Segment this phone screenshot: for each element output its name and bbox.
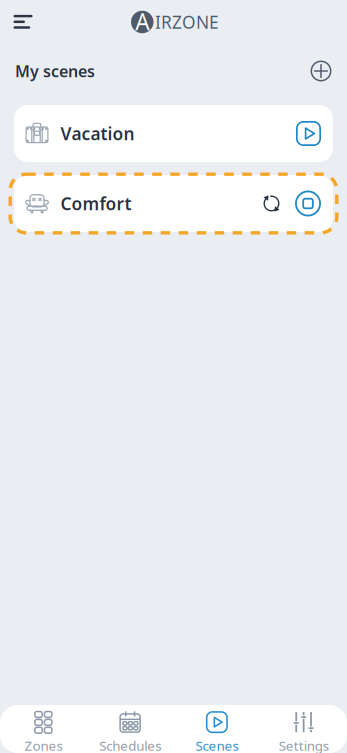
button[interactable]: Schedules [87, 703, 174, 753]
staticText: Zones [24, 737, 62, 753]
staticText: IRZONE [155, 10, 219, 33]
button[interactable]: Comfort [14, 175, 333, 232]
button[interactable]: Add scene [310, 60, 332, 82]
staticText: Comfort [60, 192, 131, 215]
staticText: Vacation [60, 122, 134, 145]
staticText: A [135, 6, 149, 36]
button[interactable]: Zones [0, 703, 87, 753]
staticText: My scenes [15, 60, 95, 82]
staticText: Settings [279, 737, 329, 753]
staticText: Schedules [99, 737, 161, 753]
staticText: Scenes [195, 737, 238, 753]
button[interactable]: Settings [260, 703, 347, 753]
button[interactable]: Menu [11, 10, 35, 34]
button[interactable]: Vacation [14, 105, 333, 162]
button[interactable]: Scenes [173, 703, 260, 753]
